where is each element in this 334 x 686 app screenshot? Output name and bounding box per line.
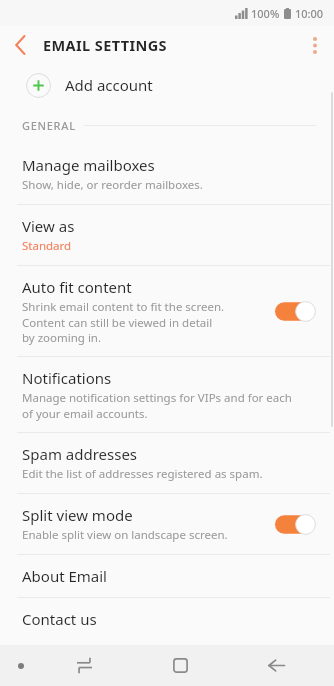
button[interactable]: Contact us [0,598,334,640]
staticText: 100% [251,6,280,21]
button[interactable]: View as [0,205,334,265]
staticText: Shrink email content to fit the screen. … [22,299,225,345]
staticText: Manage notification settings for VIPs an… [22,390,292,421]
staticText: Notifications [22,368,112,388]
button[interactable]: More options [296,26,334,64]
staticText: About Email [22,566,107,586]
button[interactable]: About Email [0,555,334,597]
button[interactable]: Home [132,645,228,686]
button[interactable]: Toggle [275,514,316,535]
button[interactable]: Add account [0,64,334,106]
staticText: Contact us [22,609,97,629]
staticText: Enable split view on landscape screen. [22,527,228,543]
staticText: GENERAL [22,118,76,133]
staticText: Standard [22,238,72,254]
button[interactable]: Toggle [275,301,316,322]
staticText: EMAIL SETTINGS [43,35,167,55]
staticText: 10:00 [295,6,324,21]
button[interactable]: Spam addresses [0,433,334,493]
staticText: Manage mailboxes [22,155,155,175]
button[interactable]: Back [228,645,324,686]
staticText: Auto fit content [22,277,132,297]
staticText: Split view mode [22,505,133,525]
button[interactable]: Notifications [0,357,334,432]
button[interactable]: Manage mailboxes [0,144,334,204]
button[interactable]: Recents [36,645,132,686]
staticText: Add account [65,75,153,95]
staticText: Spam addresses [22,444,138,464]
staticText: View as [22,216,75,236]
staticText: Edit the list of addresses registered as… [22,466,263,482]
button[interactable]: Back [0,26,40,64]
button[interactable]: Auto fit content [0,266,334,356]
staticText: Show, hide, or reorder mailboxes. [22,177,203,193]
button[interactable]: Split view mode [0,494,334,554]
